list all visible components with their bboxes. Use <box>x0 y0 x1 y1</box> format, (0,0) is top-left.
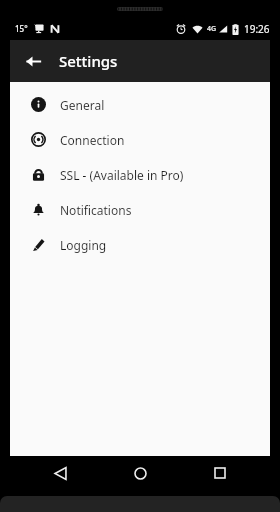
button[interactable]: Home <box>120 456 160 490</box>
button[interactable]: Logging <box>10 227 270 262</box>
staticText: Connection <box>60 132 125 148</box>
staticText: Settings <box>59 51 118 71</box>
button[interactable]: General <box>10 87 270 122</box>
button[interactable]: Connection <box>10 122 270 157</box>
staticText: Notifications <box>60 202 132 218</box>
button[interactable]: SSL - (Available in Pro) <box>10 157 270 192</box>
button[interactable]: Back <box>16 44 50 78</box>
staticText: Logging <box>60 237 107 253</box>
staticText: 15° <box>15 23 28 34</box>
staticText: 19:26 <box>244 22 270 36</box>
staticText: 4G <box>207 24 217 34</box>
staticText: SSL - (Available in Pro) <box>60 167 184 183</box>
button[interactable]: Recents <box>200 456 240 490</box>
button[interactable]: Back <box>40 456 80 490</box>
button[interactable]: Notifications <box>10 192 270 227</box>
staticText: General <box>60 97 105 113</box>
